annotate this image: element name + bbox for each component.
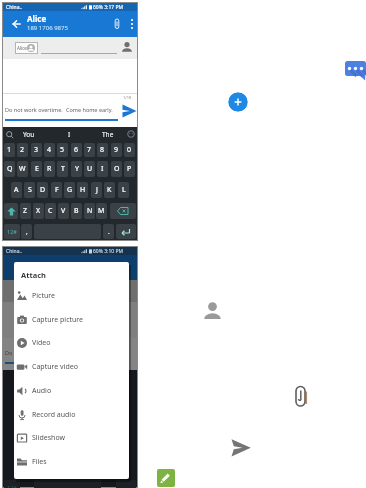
button[interactable]: 1 [4,143,15,157]
staticText: 5 [60,145,65,155]
staticText: 7 [87,145,92,155]
button[interactable]: 4 [44,143,55,157]
staticText: V [61,206,66,216]
button[interactable]: Picture [16,288,126,304]
button[interactable] [110,203,136,219]
button[interactable]: Files [16,454,126,470]
button[interactable]: You [14,127,44,141]
button[interactable]: P [124,161,135,177]
button[interactable] [4,203,18,219]
button[interactable]: V [58,203,69,219]
button[interactable]: D [37,182,48,198]
button[interactable]: L [118,182,129,198]
staticText: O [114,164,120,174]
button[interactable]: 5 [57,143,68,157]
button[interactable]: A [11,182,22,198]
staticText: Come home early. [66,106,113,113]
button[interactable]: 2 [17,143,28,157]
button[interactable]: X [33,203,44,219]
staticText: You [23,130,35,139]
button[interactable] [122,104,137,118]
button[interactable]: Video [16,335,126,351]
button[interactable]: O [111,161,122,177]
button[interactable]: I [97,161,108,177]
staticText: G [67,185,73,195]
staticText: E [35,164,39,174]
button[interactable]: , [21,224,32,239]
staticText: Picture [32,291,55,301]
button[interactable] [130,18,134,30]
button[interactable]: . [103,224,114,239]
button[interactable]: 9 [111,143,122,157]
button[interactable]: Y [71,161,82,177]
button[interactable]: N [84,203,95,219]
button[interactable]: Z [20,203,31,219]
button[interactable]: K [104,182,115,198]
button[interactable]: R [44,161,55,177]
button[interactable]: Audio [16,383,126,399]
button[interactable]: Slideshow [16,430,126,446]
staticText: Capture video [32,362,78,372]
staticText: Q [7,164,13,174]
button[interactable]: H [77,182,88,198]
staticText: , [26,227,28,236]
button[interactable]: M [96,203,107,219]
button[interactable]: I [54,127,84,141]
button[interactable]: Capture video [16,359,126,375]
staticText: M [98,206,105,216]
button[interactable]: J [91,182,102,198]
button[interactable]: Q [4,161,15,177]
button[interactable]: F [51,182,62,198]
button[interactable] [203,300,222,320]
button[interactable] [116,224,136,239]
staticText: Y [75,164,79,174]
button[interactable] [230,438,252,458]
staticText: 8 [100,145,105,155]
button[interactable] [294,385,309,408]
button[interactable]: 0 [124,143,135,157]
staticText: The [102,130,114,139]
button[interactable]: T [57,161,68,177]
button[interactable]: 8 [97,143,108,157]
button[interactable]: 12# [4,224,20,239]
staticText: D [40,185,46,195]
button[interactable] [114,18,120,30]
button[interactable]: Record audio [16,407,126,423]
staticText: 1 [7,145,12,155]
staticText: A [14,185,19,195]
button[interactable] [228,92,248,112]
button[interactable]: G [64,182,75,198]
button[interactable]: 6 [71,143,82,157]
button[interactable]: U [84,161,95,177]
staticText: Do not w [5,349,29,356]
staticText: U [87,164,93,174]
button[interactable]: 7 [84,143,95,157]
staticText: H [80,185,86,195]
staticText: F [55,185,59,195]
staticText: R [47,164,52,174]
button[interactable]: S [24,182,35,198]
staticText: 0 [127,145,132,155]
button[interactable] [121,41,133,54]
staticText: Record audio [32,410,76,420]
staticText: I [68,130,71,139]
button[interactable]: The [93,127,123,141]
staticText: B [74,206,79,216]
staticText: 60% 3:10 PM [93,248,123,255]
button[interactable]: C [45,203,56,219]
button[interactable]: B [71,203,82,219]
button[interactable]: 3 [31,143,42,157]
button[interactable] [12,20,21,28]
staticText: K [107,185,112,195]
staticText: Capture picture [32,315,84,325]
button[interactable]: Capture picture [16,312,126,328]
staticText: Slideshow [32,433,65,443]
staticText: 6 [74,145,79,155]
button[interactable] [345,61,366,81]
button[interactable] [157,469,175,487]
button[interactable]: E [31,161,42,177]
button[interactable]: W [17,161,28,177]
button[interactable]: Alice [15,42,38,54]
staticText: N [87,206,93,216]
